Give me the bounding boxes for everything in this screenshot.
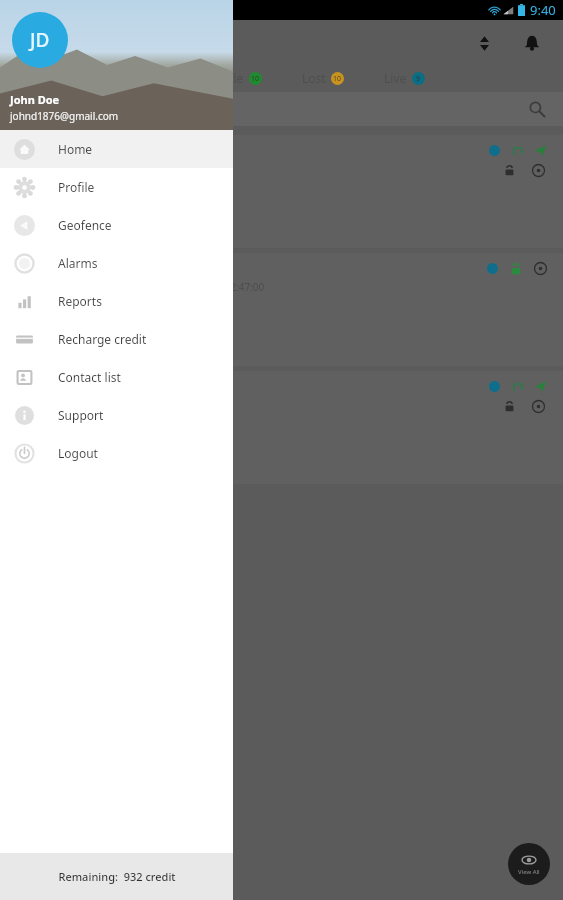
button[interactable]: Contact list	[0, 358, 233, 396]
staticText: 9	[416, 74, 421, 84]
button[interactable]: Profile	[0, 168, 233, 206]
button[interactable]: Remaining: 932 credit	[0, 853, 233, 900]
button[interactable]: Idle	[222, 70, 262, 86]
button[interactable]: Sort	[467, 26, 501, 60]
staticText: Logout	[58, 445, 98, 461]
button[interactable]: Logout	[0, 434, 233, 472]
staticText: elds WA 6210, Australia	[0, 333, 120, 348]
button[interactable]: Reports	[0, 282, 233, 320]
staticText: Reports	[58, 293, 102, 309]
staticText: John Doe	[10, 92, 60, 107]
button[interactable]: Western Australia, Australia	[0, 371, 563, 484]
staticText: johnd1876@gmail.com	[10, 109, 119, 123]
staticText: 10	[251, 74, 260, 84]
button[interactable]: JD	[12, 12, 68, 68]
button[interactable]: Home	[0, 130, 233, 168]
staticText: Remaining: 932 credit	[58, 869, 176, 884]
staticText: Profile	[58, 179, 95, 195]
staticText: Recharge credit	[58, 331, 147, 347]
staticText: Last update 2020-01-13 12:47:00	[112, 280, 265, 294]
staticText: 34%	[68, 191, 90, 206]
staticText: Support	[58, 407, 104, 423]
other: Search	[529, 101, 545, 117]
button[interactable]: 34%	[0, 135, 563, 248]
button[interactable]: Recharge credit	[0, 320, 233, 358]
staticText: Alarms	[58, 255, 98, 271]
staticText: Contact list	[58, 369, 121, 385]
staticText: Home	[58, 141, 93, 157]
staticText: 9:40	[530, 1, 556, 19]
staticText: Lost	[302, 70, 326, 86]
button[interactable]: Alarms	[0, 244, 233, 282]
staticText: Geofence	[58, 217, 112, 233]
button[interactable]: Search	[0, 92, 563, 126]
staticText: JD	[30, 27, 50, 53]
button[interactable]: Support	[0, 396, 233, 434]
button[interactable]: Notifications	[515, 26, 549, 60]
button[interactable]: Live	[384, 70, 425, 86]
staticText: Idle	[222, 70, 244, 86]
staticText: View All	[518, 868, 540, 876]
staticText: 10	[333, 74, 342, 84]
button[interactable]: Lost	[302, 70, 344, 86]
button[interactable]: Geofence	[0, 206, 233, 244]
button[interactable]: View All	[508, 843, 550, 885]
staticText: Live	[384, 70, 407, 86]
staticText: Gun Valley, Fremantle, Western Australia	[0, 215, 210, 230]
button[interactable]: Last update 2020-01-13 12:47:00	[0, 253, 563, 366]
